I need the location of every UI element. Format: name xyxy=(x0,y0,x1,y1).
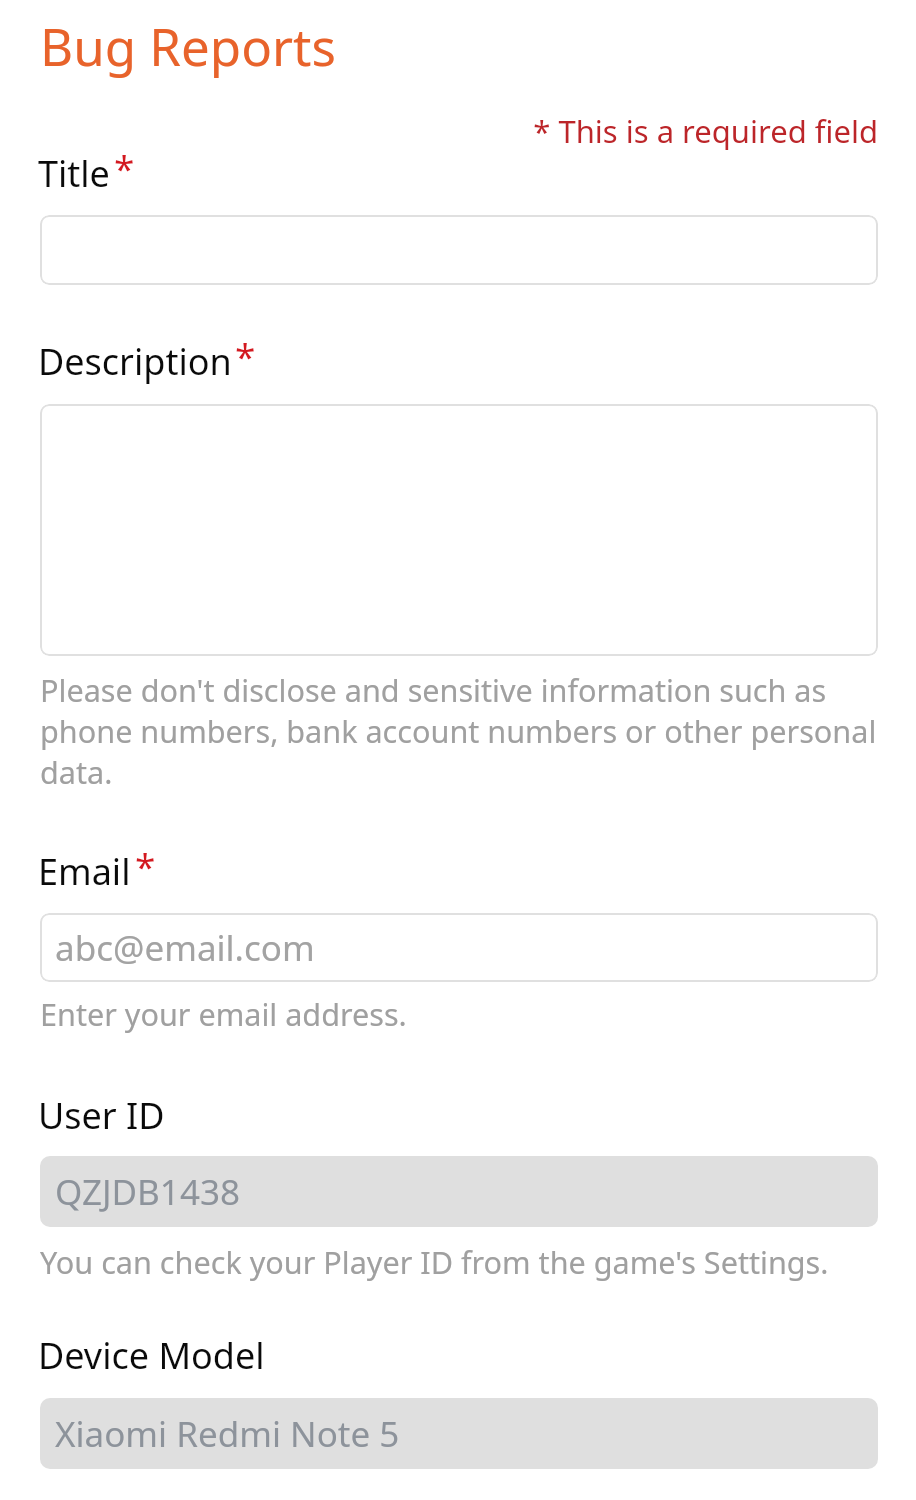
button[interactable]: abc@email.com xyxy=(40,913,878,982)
button[interactable]: Xiaomi Redmi Note 5 xyxy=(40,1398,878,1469)
button[interactable] xyxy=(40,404,878,656)
staticText: Description xyxy=(38,337,232,386)
staticText: User ID xyxy=(38,1091,165,1140)
staticText: Title xyxy=(38,149,110,198)
staticText: You can check your Player ID from the ga… xyxy=(40,1241,829,1283)
staticText: QZJDB1438 xyxy=(55,1168,240,1216)
staticText: abc@email.com xyxy=(55,924,315,972)
button[interactable] xyxy=(40,215,878,285)
staticText: Enter your email address. xyxy=(40,993,407,1035)
staticText: Email xyxy=(38,847,131,896)
staticText: Please don't disclose and sensitive info… xyxy=(40,669,900,793)
staticText: * This is a required field xyxy=(40,110,878,152)
button[interactable]: QZJDB1438 xyxy=(40,1156,878,1227)
staticText: Device Model xyxy=(38,1331,265,1380)
staticText: * xyxy=(114,142,135,192)
staticText: * xyxy=(135,840,156,890)
staticText: * xyxy=(235,330,256,380)
staticText: Bug Reports xyxy=(40,11,336,80)
staticText: Xiaomi Redmi Note 5 xyxy=(55,1410,400,1458)
